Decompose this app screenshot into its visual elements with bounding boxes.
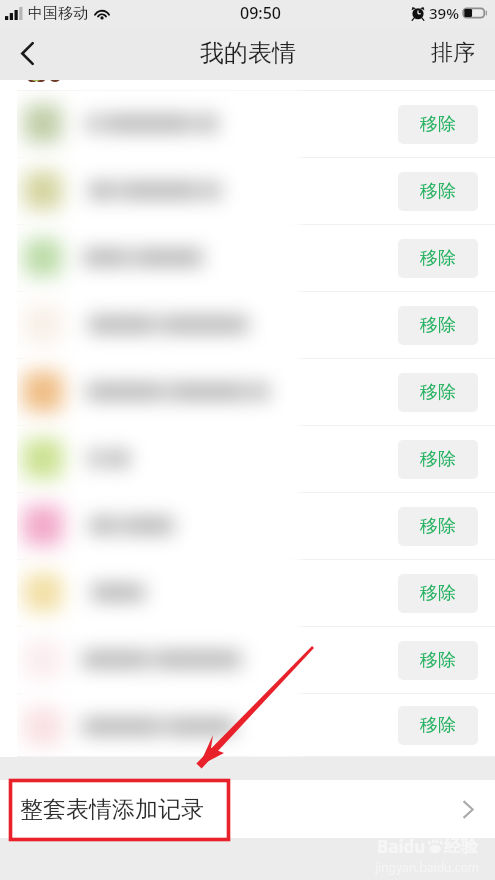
staticText: 排序 — [431, 39, 475, 67]
button[interactable]: 整套表情添加记录 — [0, 780, 495, 838]
button[interactable]: 移除 — [0, 694, 495, 757]
button[interactable]: 移除 — [0, 91, 495, 158]
button[interactable]: 移除 — [0, 225, 495, 292]
staticText: 移除 — [420, 247, 456, 270]
staticText: 我的表情 — [200, 38, 296, 68]
button[interactable]: 移除 — [0, 359, 495, 426]
button[interactable]: 移除 — [398, 172, 478, 211]
button[interactable]: 移除 — [0, 426, 495, 493]
staticText: 整套表情添加记录 — [20, 795, 204, 824]
button[interactable]: 移除 — [0, 292, 495, 359]
staticText: 39% — [429, 3, 459, 23]
button[interactable]: 移除 — [0, 493, 495, 560]
staticText: 移除 — [420, 448, 456, 471]
staticText: 移除 — [420, 314, 456, 337]
button[interactable]: 移除 — [398, 574, 478, 613]
button[interactable]: 移除 — [398, 306, 478, 345]
button[interactable]: 移除 — [398, 706, 478, 745]
button[interactable]: 移除 — [398, 641, 478, 680]
button[interactable]: 移除 — [398, 239, 478, 278]
staticText: 中国移动 — [28, 4, 88, 23]
staticText: 经验 — [444, 836, 478, 857]
button[interactable]: 移除 — [398, 105, 478, 144]
button[interactable]: 移除 — [0, 627, 495, 694]
staticText: 移除 — [420, 582, 456, 605]
staticText: 移除 — [420, 515, 456, 538]
staticText: 09:50 — [240, 2, 281, 24]
button[interactable]: 移除 — [0, 158, 495, 225]
staticText: 移除 — [420, 381, 456, 404]
staticText: 移除 — [420, 113, 456, 136]
other: More — [463, 801, 474, 818]
button[interactable]: 移除 — [0, 560, 495, 627]
staticText: 移除 — [420, 649, 456, 672]
button[interactable]: 移除 — [398, 440, 478, 479]
staticText: 移除 — [420, 180, 456, 203]
staticText: 移除 — [420, 714, 456, 737]
button[interactable]: 移除 — [398, 507, 478, 546]
button[interactable]: Back — [0, 26, 54, 80]
button[interactable]: 移除 — [398, 373, 478, 412]
staticText: Baidu — [377, 835, 426, 858]
button[interactable]: 排序 — [415, 26, 495, 80]
